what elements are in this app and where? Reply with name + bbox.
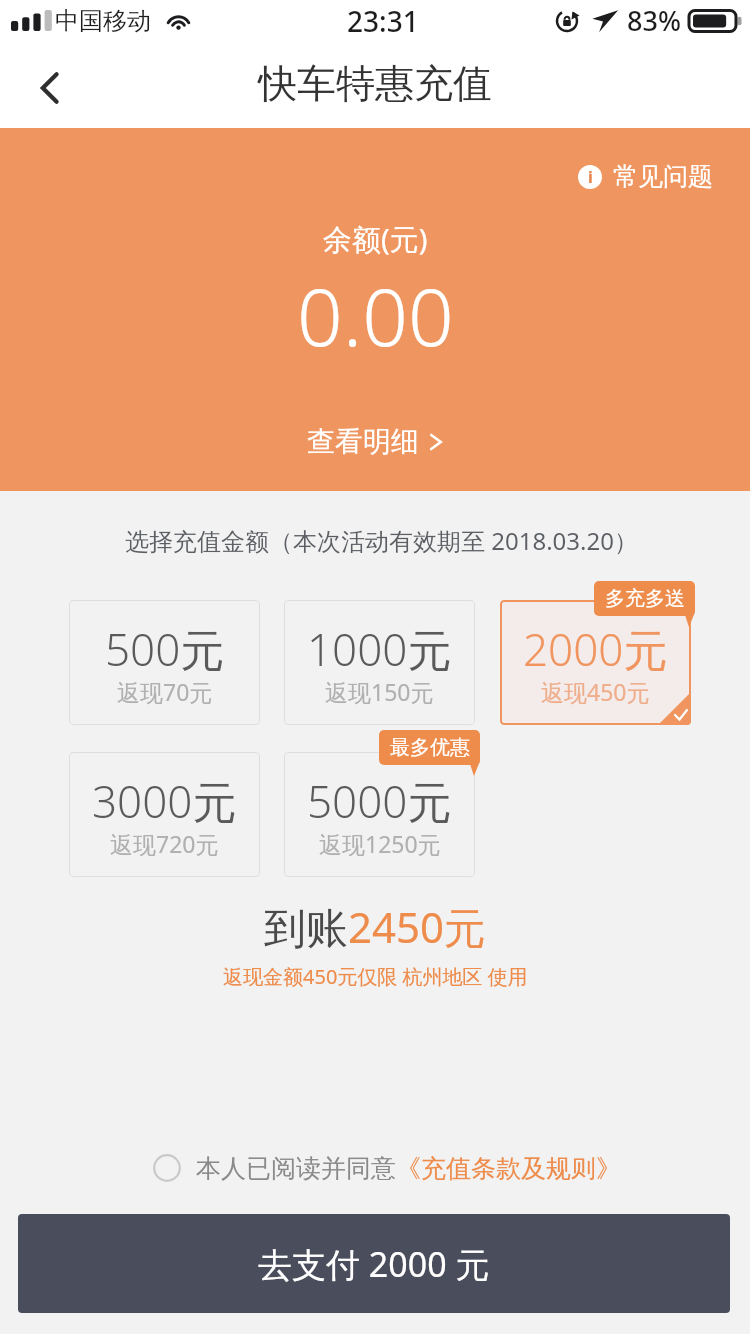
button[interactable]: 查看明细 [299,416,452,491]
button[interactable]: Back [14,48,86,128]
staticText: 返现1250元 [319,828,441,859]
staticText: 查看明细 [307,424,419,459]
button[interactable]: 500元 [69,600,260,725]
staticText: 3000元 [92,771,237,831]
button[interactable]: i [568,151,723,202]
staticText: 最多优惠 [390,735,470,760]
staticText: 多充多送 [605,586,685,611]
staticText: 常见问题 [613,161,713,192]
button[interactable]: 去支付 2000 元 [18,1214,730,1313]
button[interactable]: 3000元 [69,752,260,877]
staticText: i [588,166,593,188]
staticText: 500元 [105,619,225,679]
staticText: 中国移动 [55,6,151,36]
staticText: 5000元 [307,771,452,831]
staticText: 23:31 [347,2,419,40]
staticText: 返现金额450元仅限 杭州地区 使用 [223,963,528,990]
staticText: 余额(元) [323,219,428,259]
staticText: 返现450元 [541,676,650,707]
staticText: 0.00 [297,260,454,369]
button[interactable]: 2000元 [500,600,691,725]
button[interactable]: 5000元 [284,752,475,877]
staticText: 返现720元 [110,828,219,859]
button[interactable]: 1000元 [284,600,475,725]
staticText: 返现150元 [325,676,434,707]
staticText: 去支付 2000 元 [258,1241,490,1287]
staticText: 返现70元 [117,676,213,707]
staticText: 快车特惠充值 [258,59,492,108]
staticText: 83% [627,2,681,39]
staticText: 本人已阅读并同意《充值条款及规则》 [196,1153,621,1184]
button[interactable]: 本人已阅读并同意《充值条款及规则》 [12,1142,750,1194]
staticText: 2000元 [523,619,668,679]
staticText: 到账2450元 [264,898,487,955]
staticText: 选择充值金额（本次活动有效期至 2018.03.20） [125,524,638,557]
staticText: 1000元 [307,619,452,679]
